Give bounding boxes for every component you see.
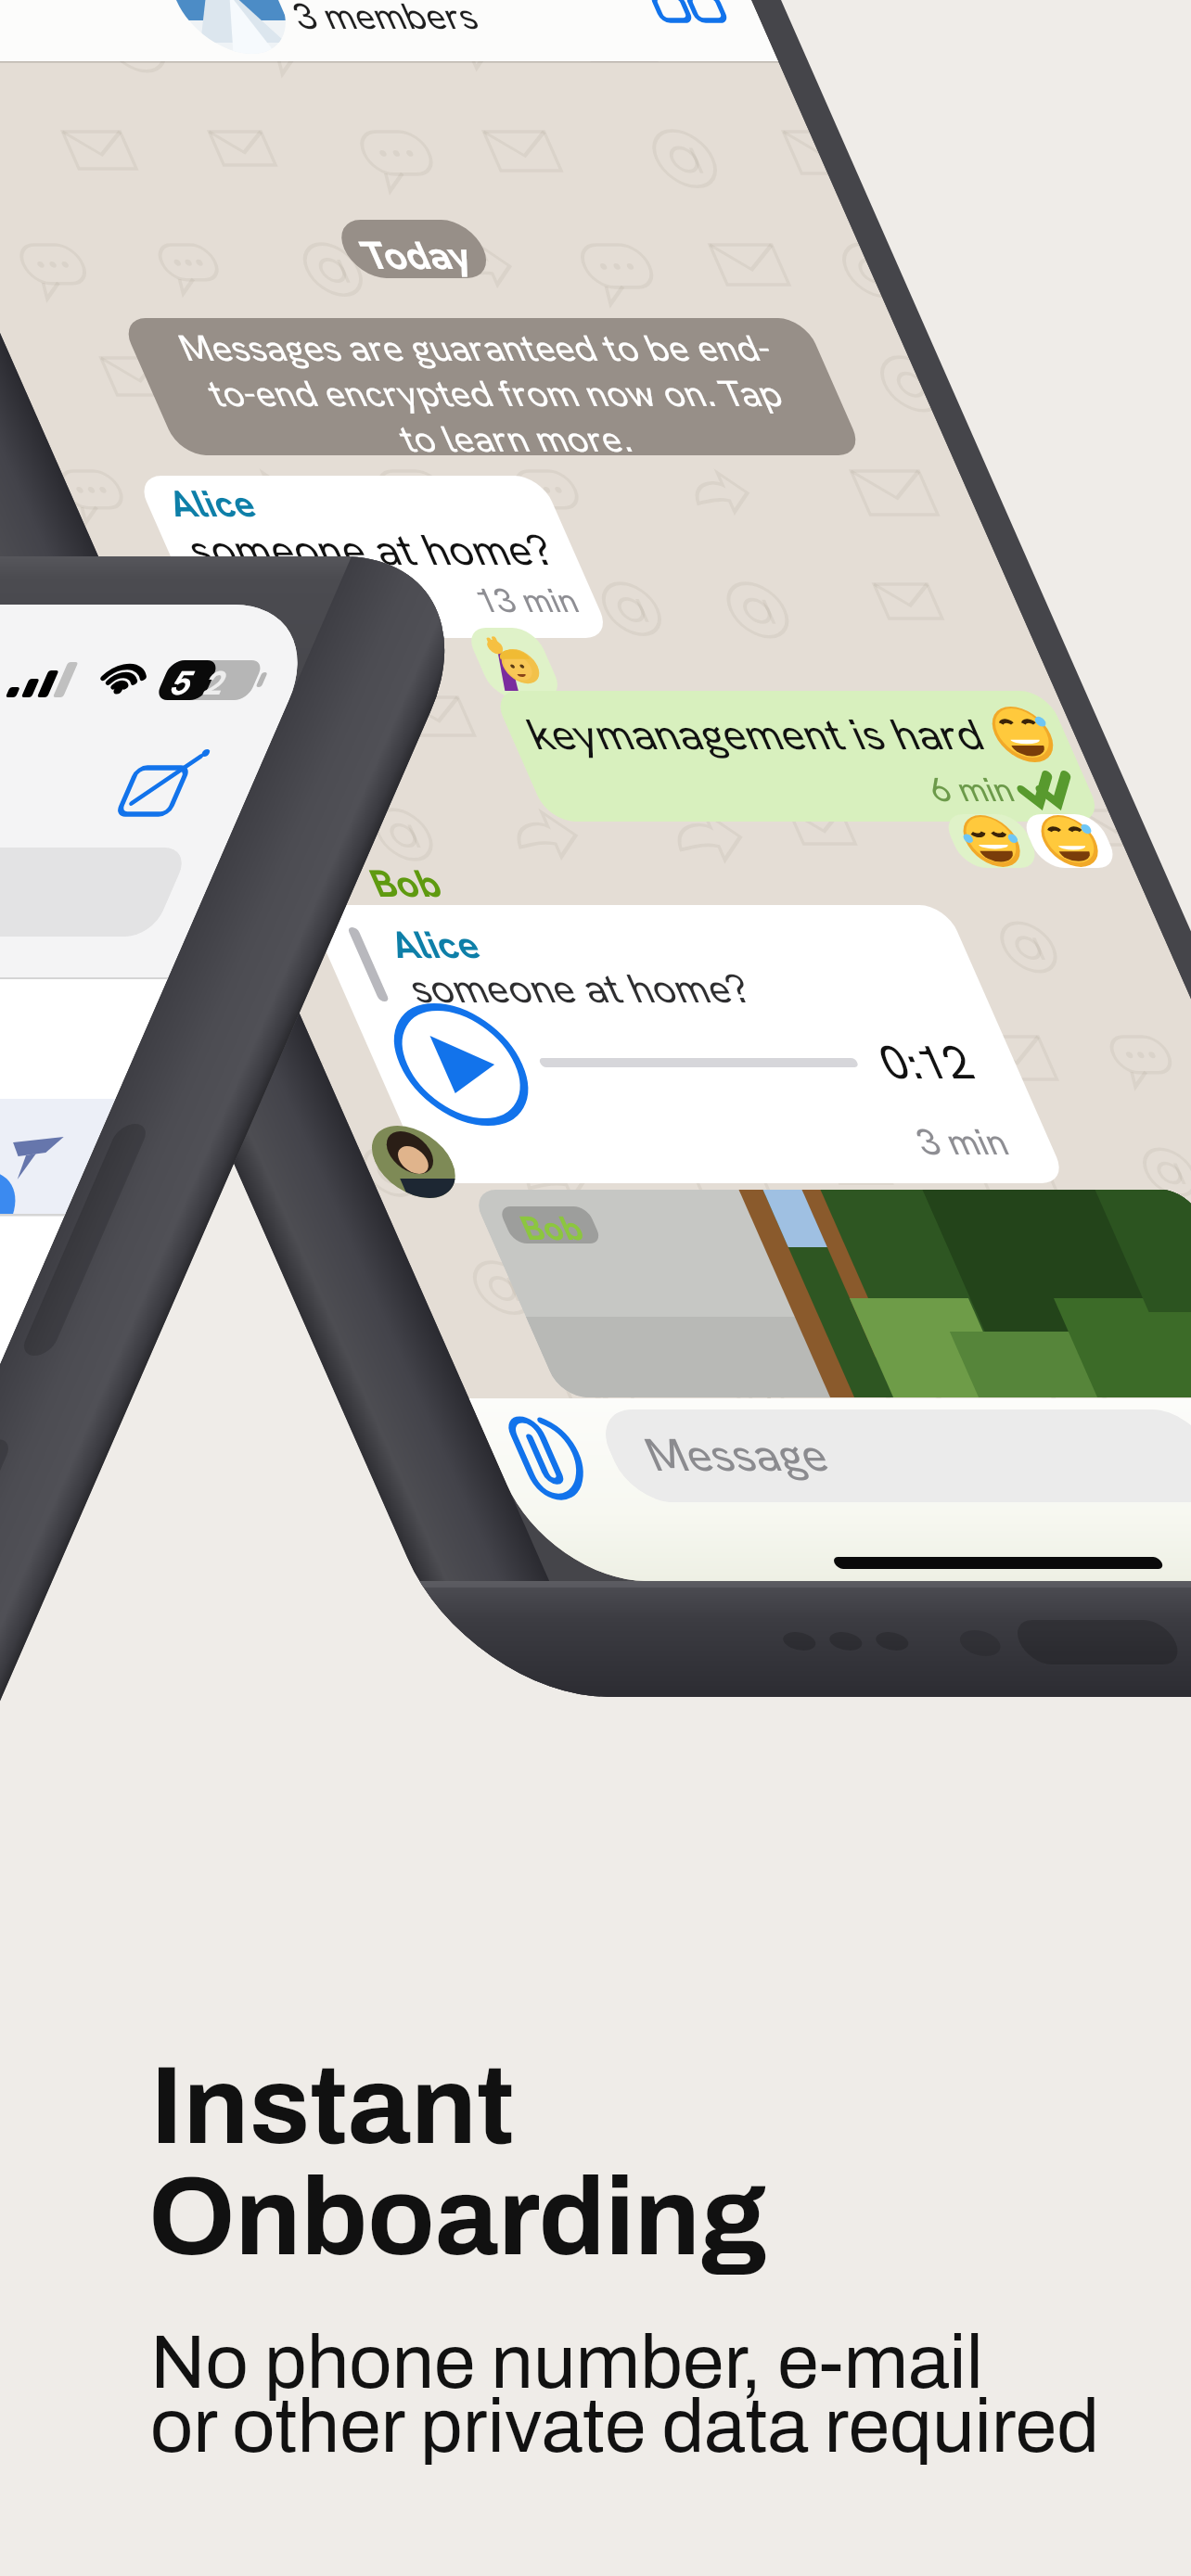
button[interactable]: Pinned chat — [0, 1094, 158, 1233]
button[interactable]: Group media and files — [668, 0, 770, 61]
button[interactable]: Play voice message — [408, 1001, 557, 1141]
button[interactable]: Search chats — [0, 816, 186, 955]
button[interactable]: Attach file — [516, 1408, 618, 1510]
button[interactable]: New chat — [121, 742, 223, 835]
button[interactable]: Instant Onboarding. No phone number, e-m… — [148, 2049, 1132, 2439]
button[interactable]: Family group, 3 members — [174, 0, 564, 59]
button[interactable]: Alice: someone at home? 13 min — [139, 469, 575, 647]
button[interactable]: Voice message from Bob, 0:12 — [371, 870, 1057, 1189]
button[interactable]: Message input field — [594, 1402, 1191, 1511]
button[interactable]: Photo from Bob — [471, 1183, 1191, 1402]
button[interactable]: keymanagement is hard, sent 6 min ago — [492, 684, 1067, 831]
button[interactable]: Messages are end-to-end encrypted. Tap t… — [119, 312, 861, 464]
